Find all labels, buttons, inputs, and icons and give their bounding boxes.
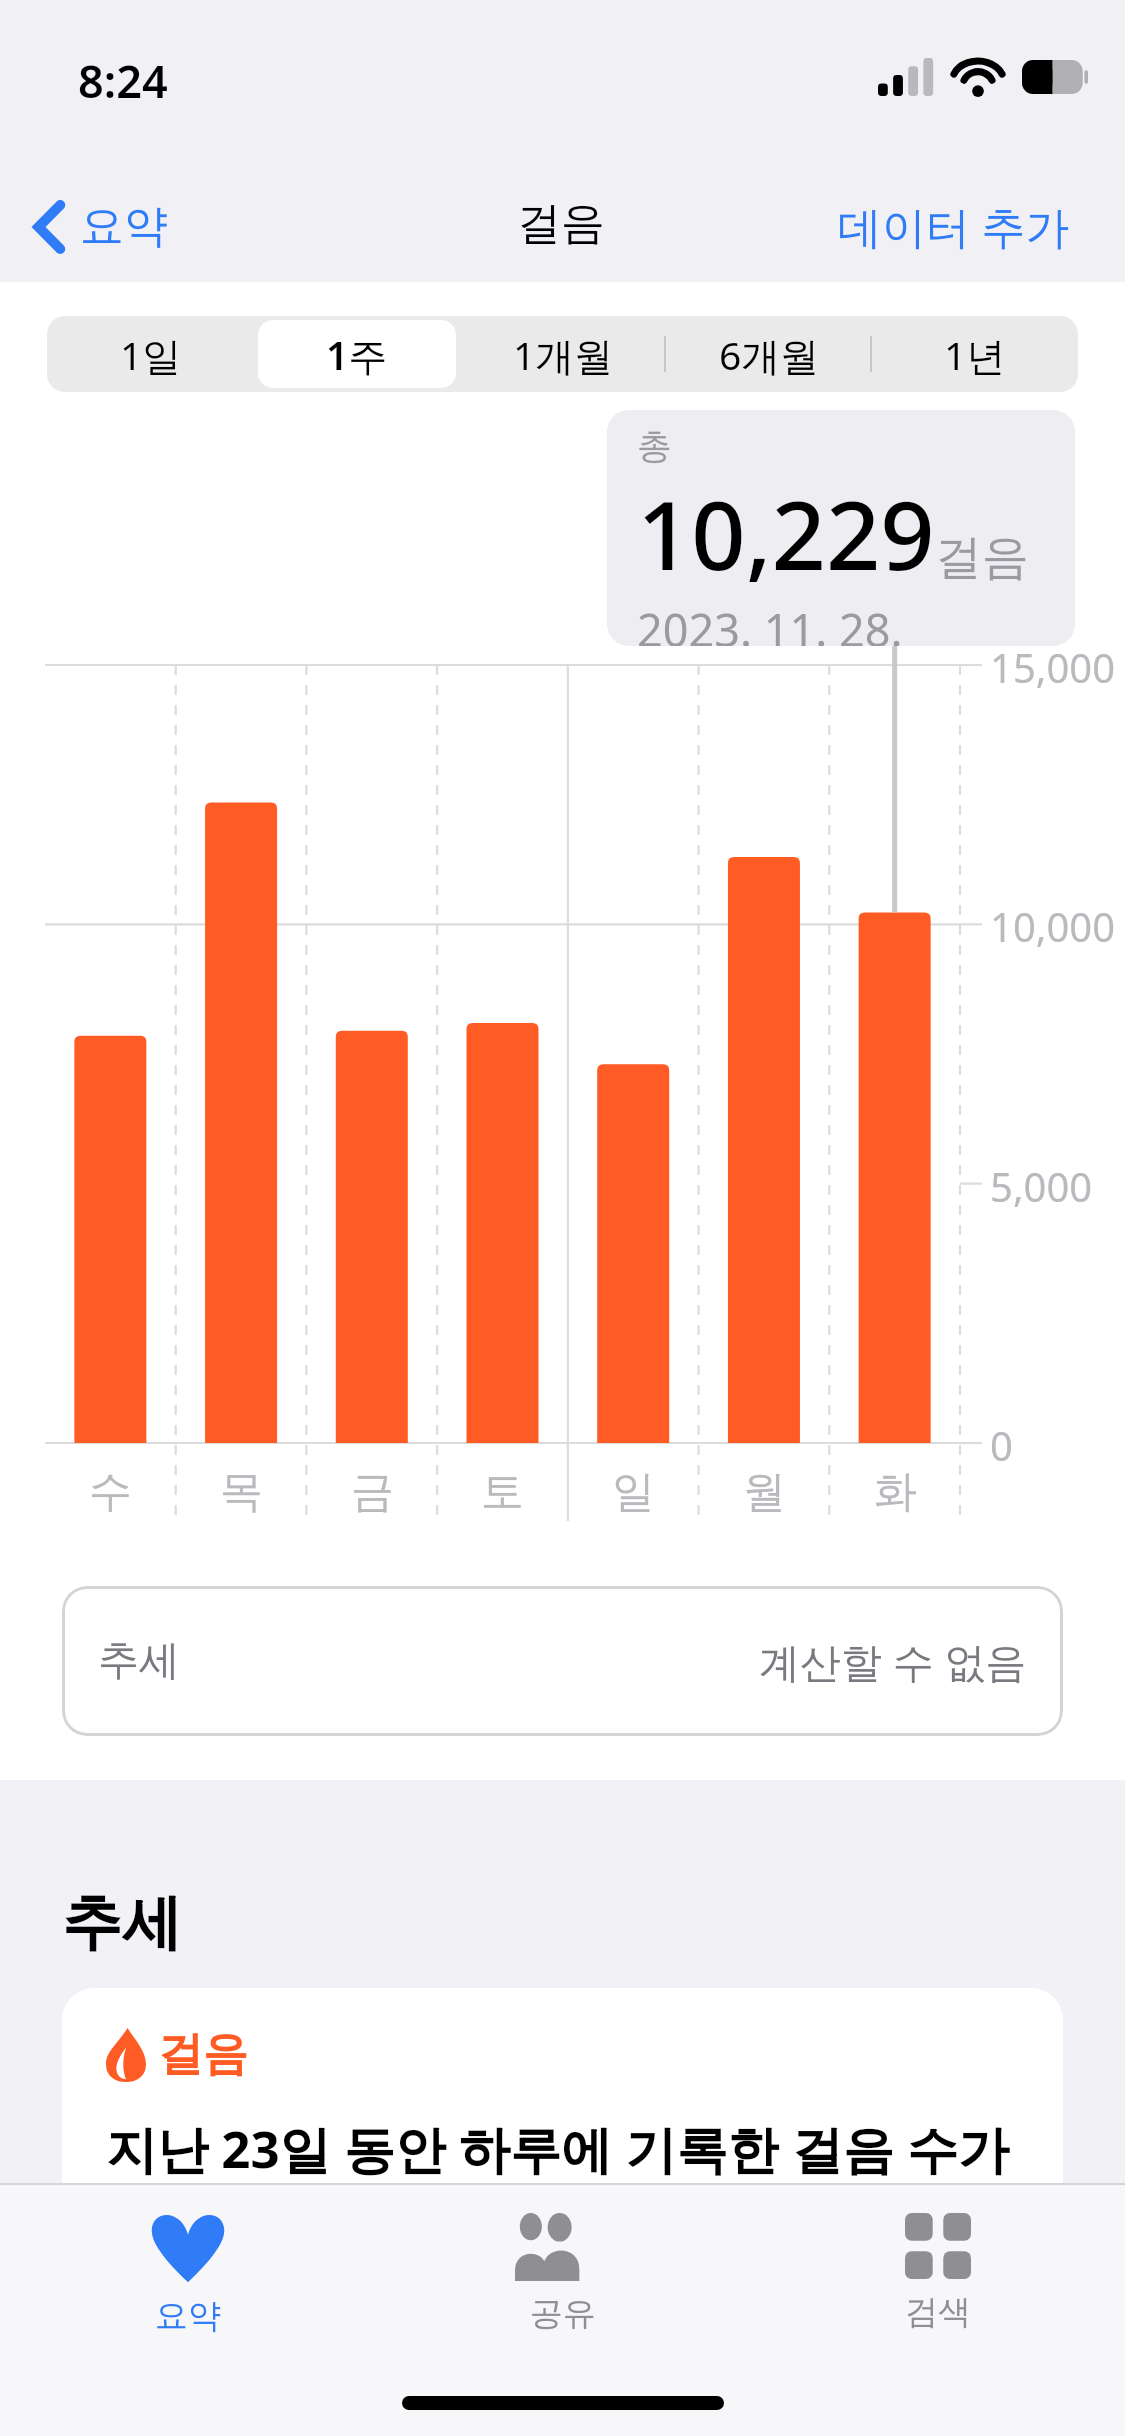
staticText: 요약 — [155, 2295, 221, 2337]
other: 공유 — [515, 2213, 611, 2281]
other: 검색 — [905, 2213, 971, 2279]
staticText: 1일 — [120, 328, 182, 381]
staticText: 걸음 — [158, 2026, 248, 2083]
staticText: 10,000 — [990, 899, 1116, 953]
staticText: 수 — [89, 1465, 132, 1519]
staticText: 2023. 11. 28. — [637, 599, 903, 646]
staticText: 8:24 — [78, 50, 168, 111]
staticText: 토 — [481, 1465, 524, 1519]
button[interactable]: 검색 — [750, 2205, 1125, 2341]
staticText: 15,000 — [990, 640, 1116, 694]
staticText: 1년 — [944, 328, 1006, 381]
button[interactable]: 6개월 — [670, 320, 868, 388]
staticText: 요약 — [80, 199, 168, 254]
staticText: 지난 23일 동안 하루에 기록한 걸음 수가 — [106, 2113, 1009, 2183]
staticText: 0 — [990, 1418, 1013, 1472]
staticText: 걸음 — [935, 528, 1029, 587]
staticText: 추세 — [62, 1885, 182, 1961]
button[interactable]: 데이터 추가 — [818, 182, 1090, 270]
button[interactable]: 1일 — [51, 320, 250, 388]
button[interactable]: 요약 — [0, 2205, 375, 2345]
button[interactable]: 요약 — [20, 185, 182, 268]
staticText: 걸음 — [517, 196, 605, 251]
staticText: 계산할 수 없음 — [759, 1633, 1027, 1689]
staticText: 일 — [612, 1465, 655, 1519]
button[interactable]: 1년 — [876, 320, 1074, 388]
button[interactable]: 1개월 — [464, 320, 662, 388]
button[interactable]: 공유 — [375, 2205, 750, 2343]
staticText: 추세 — [98, 1635, 180, 1687]
staticText: 화 — [874, 1465, 917, 1519]
staticText: 총 — [637, 424, 672, 468]
staticText: 목 — [220, 1465, 263, 1519]
staticText: 1주 — [326, 328, 388, 381]
button[interactable]: 1주 — [258, 320, 456, 388]
staticText: 데이터 추가 — [838, 196, 1070, 256]
button[interactable]: 총 — [607, 410, 1075, 646]
button[interactable]: 걸음 — [62, 1988, 1063, 2185]
staticText: 6개월 — [719, 328, 820, 381]
staticText: 월 — [743, 1465, 786, 1519]
staticText: 검색 — [905, 2291, 971, 2333]
staticText: 공유 — [530, 2293, 596, 2335]
staticText: 5,000 — [990, 1159, 1093, 1213]
staticText: 1개월 — [513, 328, 614, 381]
staticText: 금 — [351, 1465, 394, 1519]
other: 요약 — [151, 2213, 225, 2283]
staticText: 10,229 — [637, 468, 935, 597]
button[interactable]: 추세 — [62, 1586, 1063, 1736]
